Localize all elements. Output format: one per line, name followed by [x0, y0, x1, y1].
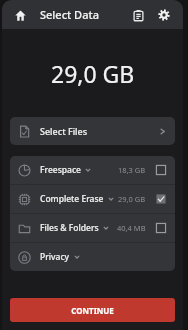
button[interactable]: Unchecked — [155, 164, 167, 176]
staticText: Files & Folders — [40, 222, 99, 234]
button[interactable]: Settings — [155, 6, 173, 24]
staticText: 29,0 GB — [51, 58, 135, 89]
staticText: Select Files — [40, 125, 88, 137]
staticText: 40,4 MB — [117, 223, 146, 233]
staticText: 29,0 GB — [118, 194, 146, 204]
staticText: Select Data — [40, 7, 99, 22]
staticText: Privacy — [40, 251, 70, 263]
staticText: Freespace — [40, 164, 81, 176]
button[interactable]: Log — [129, 6, 147, 24]
button[interactable]: CONTINUE — [10, 298, 175, 322]
button[interactable]: Freespace — [10, 156, 175, 184]
button[interactable]: Privacy — [10, 243, 175, 271]
button[interactable]: Checked — [155, 193, 167, 205]
button[interactable]: Select Files — [10, 117, 175, 145]
staticText: CONTINUE — [71, 305, 114, 316]
button[interactable]: Complete Erase — [10, 185, 175, 213]
staticText: 18,3 GB — [118, 165, 146, 175]
button[interactable]: Files & Folders — [10, 214, 175, 242]
staticText: Complete Erase — [40, 193, 104, 205]
button[interactable]: Unchecked — [155, 222, 167, 234]
button[interactable]: Home — [12, 7, 28, 23]
